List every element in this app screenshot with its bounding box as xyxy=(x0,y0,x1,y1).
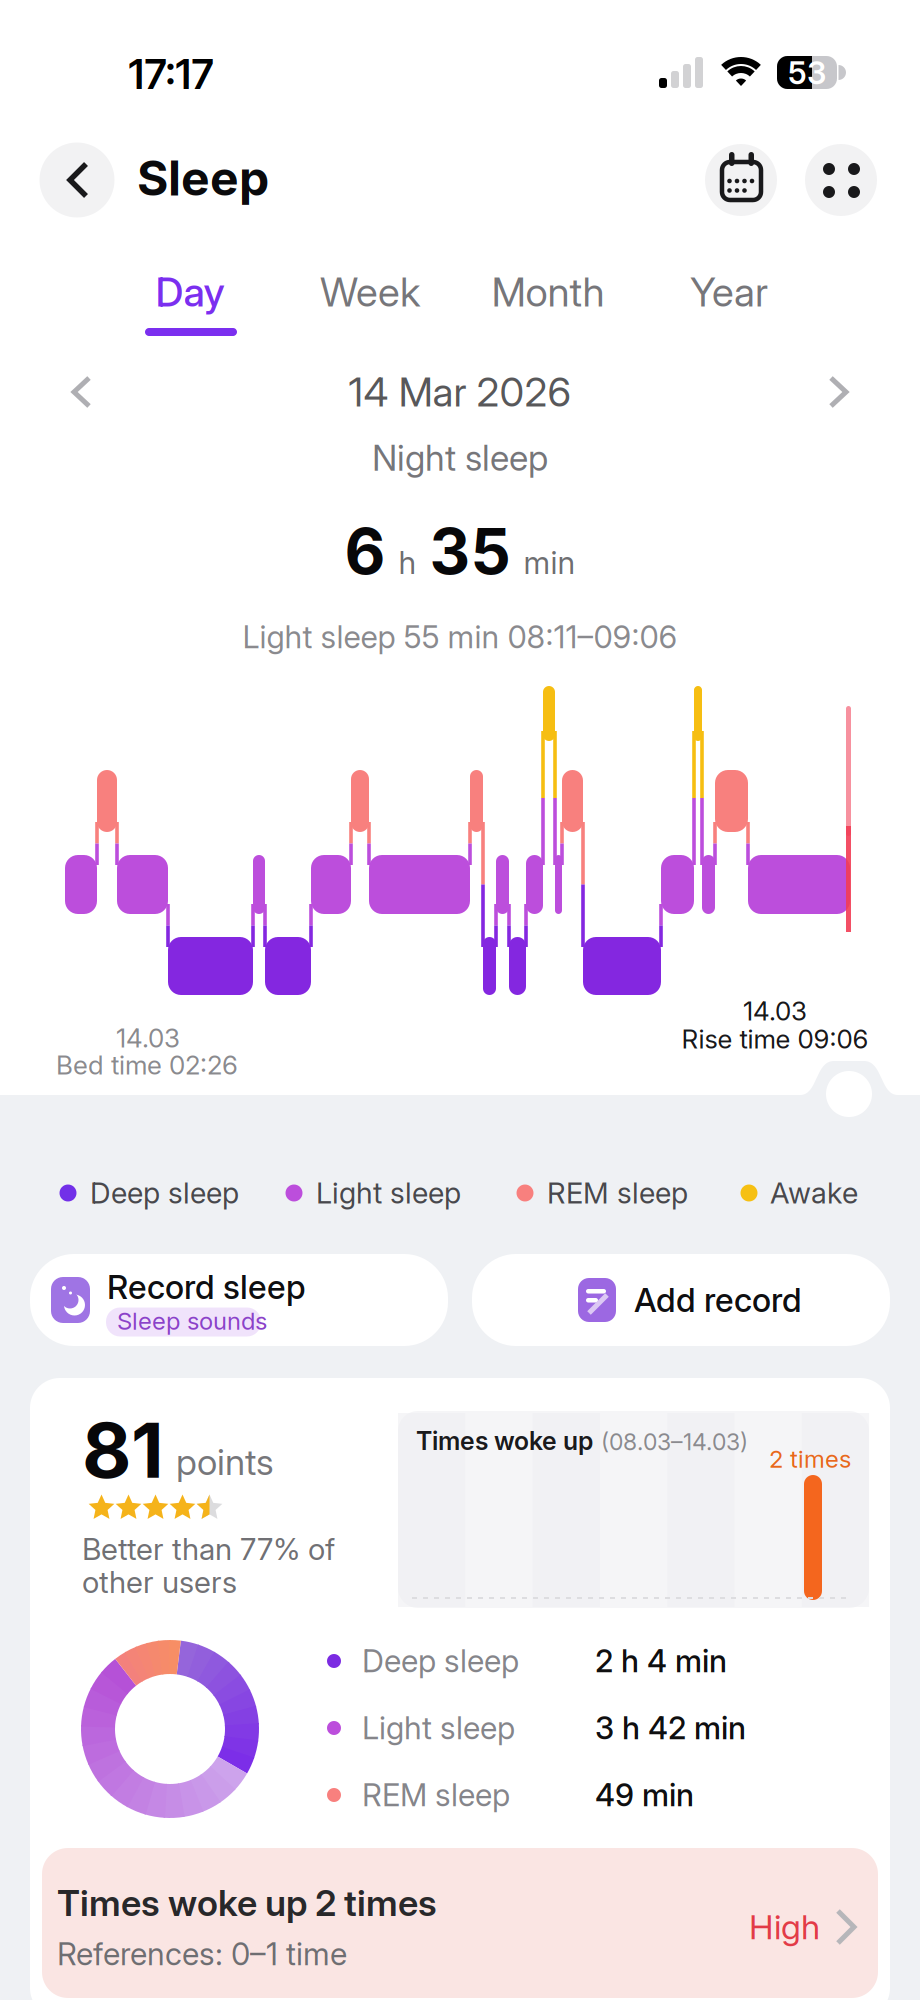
staticText: 3 h 42 min xyxy=(595,1709,746,1747)
button[interactable]: Month xyxy=(0,0,920,2000)
staticText: Times woke up xyxy=(416,1426,593,1456)
staticText: 81 xyxy=(82,1404,164,1496)
staticText: Light sleep xyxy=(316,1175,461,1211)
staticText: REM sleep xyxy=(547,1175,688,1211)
button[interactable] xyxy=(0,0,920,2000)
staticText: 53 xyxy=(788,54,826,92)
button[interactable] xyxy=(0,0,920,2000)
staticText: Deep sleep xyxy=(90,1175,239,1211)
staticText: 2 h 4 min xyxy=(595,1642,727,1680)
staticText: Awake xyxy=(770,1175,858,1211)
staticText: other users xyxy=(82,1564,237,1600)
staticText: Day xyxy=(155,268,224,316)
staticText: Record sleep xyxy=(107,1267,306,1307)
button[interactable]: Year xyxy=(0,0,920,2000)
staticText: Night sleep xyxy=(372,437,548,479)
staticText: Year xyxy=(690,268,768,316)
staticText: 6 xyxy=(344,513,385,589)
button[interactable] xyxy=(0,0,920,2000)
staticText: Bed time 02:26 xyxy=(56,1049,238,1081)
button[interactable] xyxy=(0,0,920,2000)
button[interactable]: Day xyxy=(0,0,920,2000)
staticText: 14.03 xyxy=(743,995,807,1027)
staticText: Rise time 09:06 xyxy=(681,1023,868,1055)
staticText: Better than 77% of xyxy=(82,1531,335,1567)
staticText: Week xyxy=(320,268,420,316)
staticText: min xyxy=(523,544,575,581)
staticText: References: 0–1 time xyxy=(57,1935,347,1973)
staticText: 14.03 xyxy=(116,1022,180,1054)
staticText: h xyxy=(398,544,416,581)
staticText: Times woke up 2 times xyxy=(57,1881,437,1925)
staticText: REM sleep xyxy=(362,1776,510,1814)
staticText: Sleep xyxy=(137,149,269,207)
staticText: High xyxy=(749,1906,820,1947)
staticText: Light sleep xyxy=(362,1709,515,1747)
staticText: 14 Mar 2026 xyxy=(348,368,571,416)
staticText: Month xyxy=(491,268,604,316)
staticText: 2 times xyxy=(769,1444,851,1473)
staticText: (08.03–14.03) xyxy=(601,1428,748,1456)
staticText: 49 min xyxy=(595,1776,694,1814)
button[interactable]: Times woke up 2 times xyxy=(0,0,920,2000)
staticText: Add record xyxy=(634,1280,802,1320)
staticText: Sleep sounds xyxy=(117,1306,267,1335)
button[interactable]: Week xyxy=(0,0,920,2000)
staticText: points xyxy=(176,1440,274,1484)
staticText: 17:17 xyxy=(128,49,213,99)
button[interactable]: Record sleep xyxy=(0,0,920,2000)
button[interactable] xyxy=(0,0,920,2000)
staticText: Deep sleep xyxy=(362,1642,519,1680)
staticText: Light sleep 55 min 08:11–09:06 xyxy=(242,618,677,656)
staticText: 35 xyxy=(429,513,510,589)
button[interactable]: Add record xyxy=(0,0,920,2000)
button[interactable] xyxy=(0,0,920,2000)
